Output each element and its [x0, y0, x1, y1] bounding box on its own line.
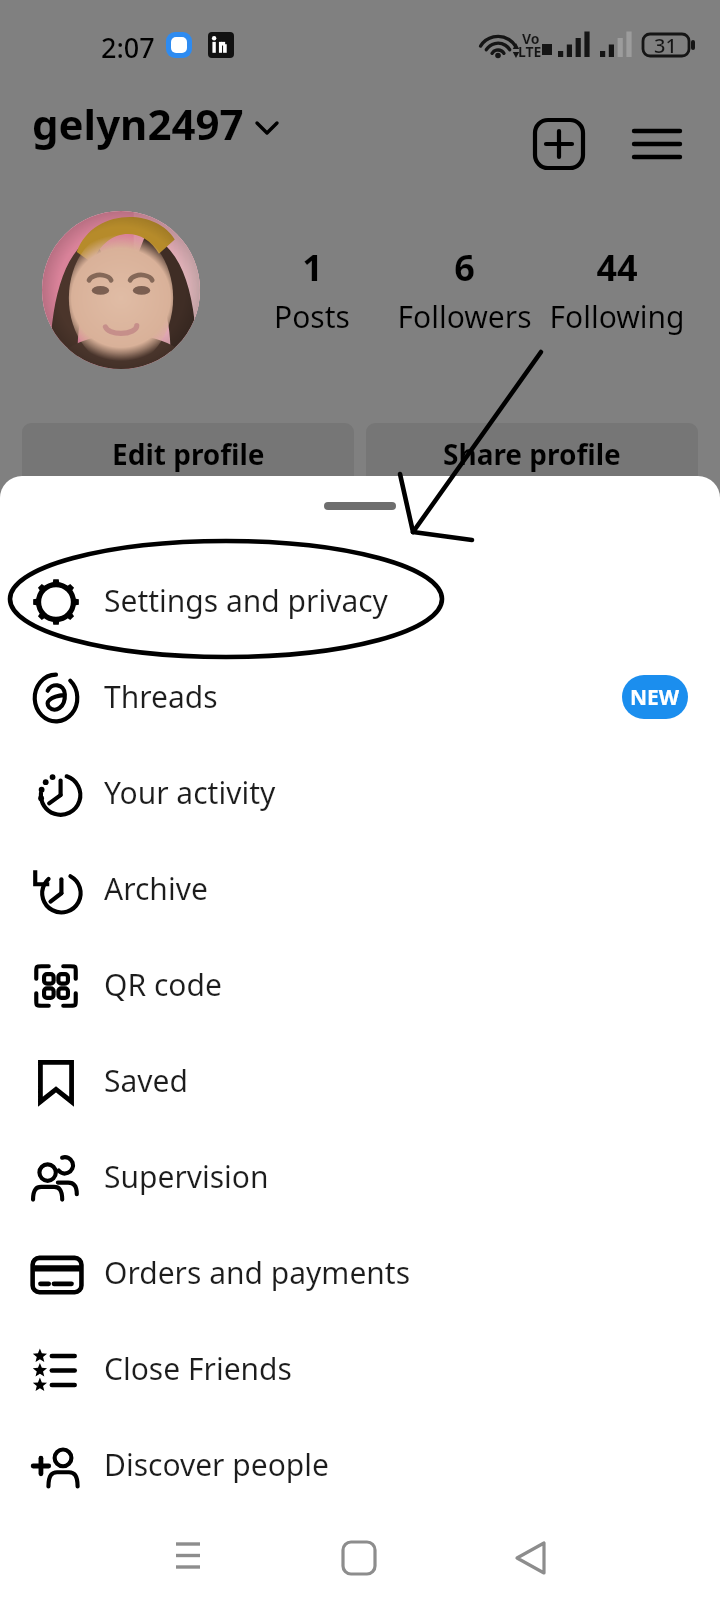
button[interactable]: gelyn2497	[32, 95, 280, 152]
staticText: Your activity	[104, 772, 276, 813]
button[interactable]: Recents	[146, 1516, 230, 1600]
staticText: Vo	[522, 29, 540, 48]
button[interactable]: Orders and payments	[0, 1225, 720, 1321]
button[interactable]: 44	[527, 243, 707, 337]
staticText: LTE	[518, 42, 542, 61]
staticText: Settings and privacy	[104, 580, 388, 621]
button[interactable]: Share profile	[366, 423, 698, 485]
button[interactable]: Profile photo	[42, 211, 200, 369]
button[interactable]: Settings and privacy	[0, 553, 720, 649]
button[interactable]: 6	[374, 243, 554, 337]
button[interactable]: 1	[222, 243, 402, 337]
staticText: NEW	[630, 683, 680, 712]
button[interactable]: Edit profile	[22, 423, 354, 485]
button[interactable]: Saved	[0, 1033, 720, 1129]
staticText: 2:07	[101, 29, 155, 66]
button[interactable]: Home	[317, 1516, 401, 1600]
button[interactable]: Supervision	[0, 1129, 720, 1225]
staticText: Posts	[274, 296, 350, 337]
staticText: Saved	[104, 1060, 188, 1101]
button[interactable]: Archive	[0, 841, 720, 937]
button[interactable]: Back	[489, 1516, 573, 1600]
staticText: 1	[302, 243, 323, 292]
button[interactable]: Create	[532, 117, 586, 171]
staticText: gelyn2497	[32, 95, 244, 152]
staticText: Close Friends	[104, 1348, 292, 1389]
button[interactable]: Close Friends	[0, 1321, 720, 1417]
staticText: Following	[549, 296, 685, 337]
staticText: 6	[454, 243, 475, 292]
button[interactable]: Your activity	[0, 745, 720, 841]
staticText: Discover people	[104, 1444, 329, 1485]
staticText: Threads	[104, 676, 218, 717]
button[interactable]: QR code	[0, 937, 720, 1033]
staticText: Supervision	[104, 1156, 269, 1197]
staticText: Share profile	[443, 435, 621, 473]
button[interactable]: Menu	[630, 117, 684, 171]
staticText: 31	[654, 32, 677, 59]
staticText: 44	[596, 243, 638, 292]
staticText: Archive	[104, 868, 208, 909]
staticText: Followers	[397, 296, 532, 337]
button[interactable]: Threads	[0, 649, 720, 745]
staticText: Orders and payments	[104, 1252, 411, 1293]
button[interactable]: Discover people	[0, 1417, 720, 1513]
staticText: QR code	[104, 964, 222, 1005]
staticText: Edit profile	[112, 435, 265, 473]
